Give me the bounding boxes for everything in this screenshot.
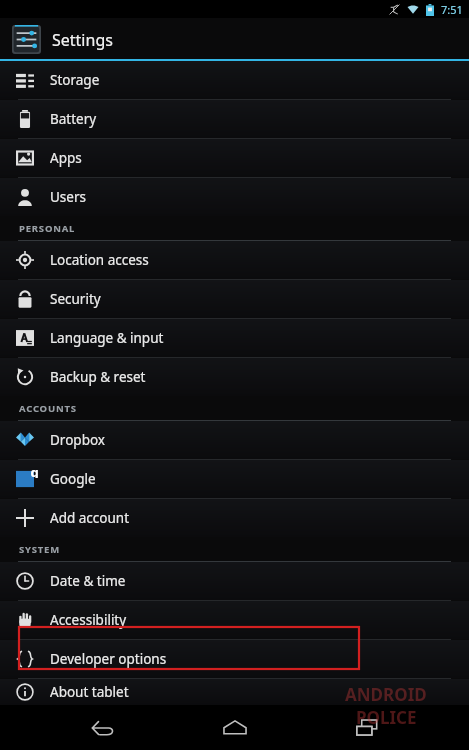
staticText: Language & input [50, 329, 164, 347]
staticText: POLICE [356, 706, 417, 729]
button[interactable]: Apps [0, 139, 469, 177]
staticText: Dropbox [50, 431, 105, 449]
staticText: Apps [50, 149, 82, 167]
button[interactable]: Location access [0, 241, 469, 279]
staticText: Add account [50, 509, 130, 527]
staticText: Date & time [50, 572, 126, 590]
button[interactable]: Storage [0, 61, 469, 99]
staticText: 7:51 [441, 2, 463, 17]
staticText: Security [50, 290, 101, 308]
button[interactable]: Dropbox [0, 421, 469, 459]
staticText: Google [50, 470, 96, 488]
button[interactable]: Recent apps [337, 705, 397, 750]
button[interactable]: Battery [0, 100, 469, 138]
button[interactable]: Backup & reset [0, 358, 469, 396]
staticText: Battery [50, 110, 97, 128]
staticText: SYSTEM [19, 543, 60, 556]
staticText: Developer options [50, 650, 167, 668]
button[interactable]: About tablet [0, 679, 469, 705]
button[interactable]: Home [205, 705, 265, 750]
button[interactable]: Google [0, 460, 469, 498]
staticText: Settings [52, 29, 113, 51]
button[interactable]: Users [0, 178, 469, 216]
button[interactable]: Back [72, 705, 132, 750]
staticText: g [30, 463, 39, 478]
staticText: PERSONAL [19, 222, 76, 235]
button[interactable]: Developer options [0, 640, 469, 678]
staticText: Users [50, 188, 86, 206]
staticText: Location access [50, 251, 149, 269]
button[interactable]: Language & input [0, 319, 469, 357]
staticText: About tablet [50, 683, 129, 701]
button[interactable]: Security [0, 280, 469, 318]
staticText: Storage [50, 71, 100, 89]
staticText: ANDROID [345, 683, 427, 706]
button[interactable]: Date & time [0, 562, 469, 600]
staticText: ACCOUNTS [19, 402, 77, 415]
staticText: Backup & reset [50, 368, 146, 386]
button[interactable]: Add account [0, 499, 469, 537]
staticText: Accessibility [50, 611, 127, 629]
button[interactable]: Accessibility [0, 601, 469, 639]
